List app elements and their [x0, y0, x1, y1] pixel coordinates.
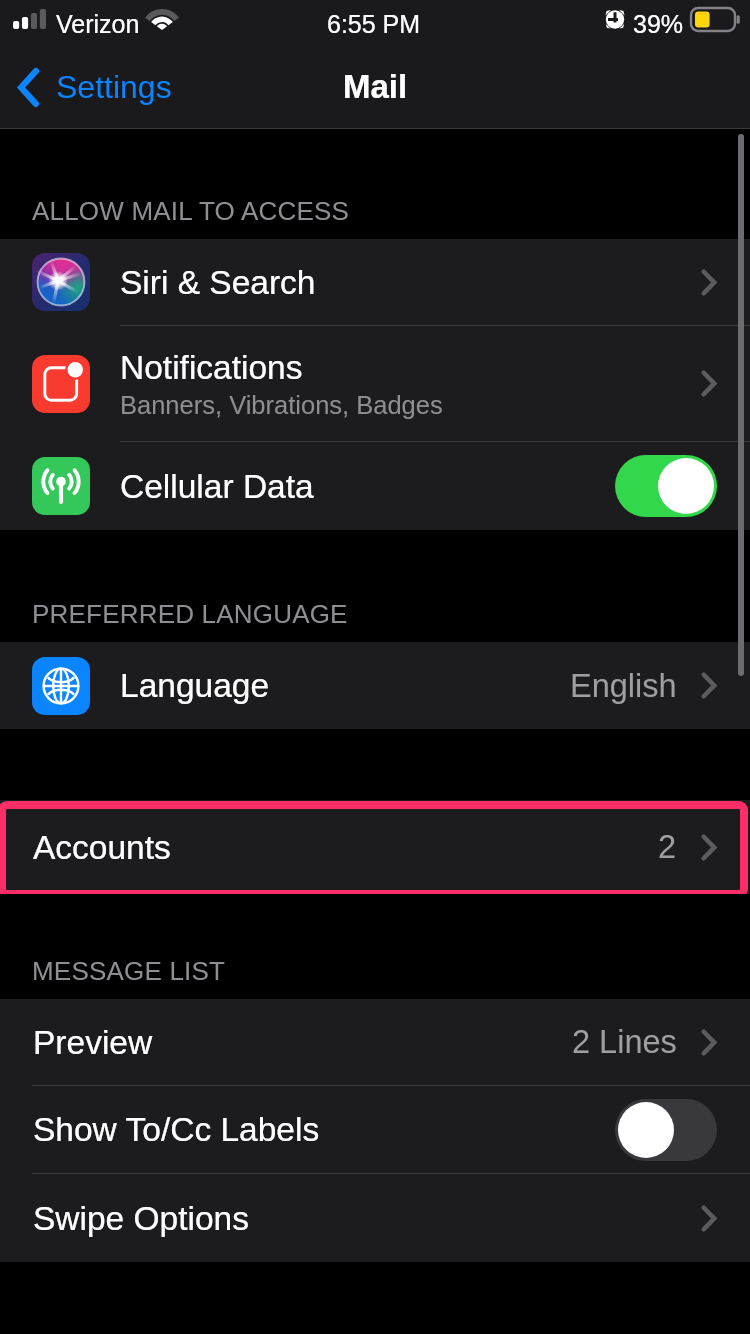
button[interactable]: Language: [0, 642, 750, 729]
staticText: 2 Lines: [572, 1024, 677, 1060]
button[interactable]: Siri & Search: [0, 239, 750, 326]
staticText: ALLOW MAIL TO ACCESS: [32, 196, 350, 225]
button[interactable]: Notifications: [0, 326, 750, 442]
staticText: MESSAGE LIST: [32, 956, 226, 985]
button[interactable]: Accounts: [0, 800, 750, 894]
staticText: Siri & Search: [120, 264, 316, 301]
staticText: Cellular Data: [120, 468, 314, 505]
button[interactable]: Settings: [0, 45, 186, 129]
staticText: 6:55 PM: [327, 10, 421, 38]
staticText: Show To/Cc Labels: [33, 1111, 320, 1148]
button[interactable]: Cellular Data: [0, 442, 750, 530]
button[interactable]: Show To/Cc Labels: [0, 1086, 750, 1174]
button[interactable]: Toggle on: [615, 455, 717, 517]
staticText: Mail: [343, 68, 408, 105]
staticText: English: [570, 668, 677, 704]
staticText: Swipe Options: [33, 1200, 249, 1237]
staticText: 2: [658, 829, 677, 865]
button[interactable]: Swipe Options: [0, 1174, 750, 1262]
staticText: Notifications: [120, 349, 303, 386]
staticText: Language: [120, 667, 270, 704]
staticText: PREFERRED LANGUAGE: [32, 599, 348, 628]
staticText: Settings: [56, 69, 172, 105]
staticText: Accounts: [33, 829, 171, 866]
staticText: Preview: [33, 1024, 153, 1061]
staticText: 39%: [633, 10, 684, 38]
staticText: Verizon: [56, 10, 140, 38]
button[interactable]: Preview: [0, 999, 750, 1086]
button[interactable]: Toggle off: [615, 1099, 717, 1161]
staticText: Banners, Vibrations, Badges: [120, 391, 443, 419]
